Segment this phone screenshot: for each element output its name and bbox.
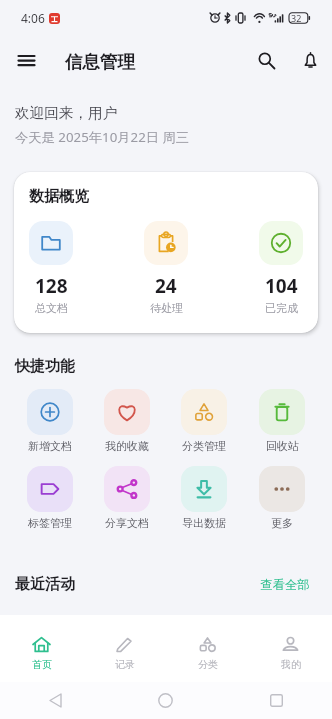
button[interactable]: 标签管理 (11, 466, 88, 530)
staticText: 导出数据 (182, 516, 226, 530)
staticText: 分类管理 (182, 439, 226, 453)
button[interactable]: 分类 (166, 615, 249, 671)
staticText: 信息管理 (65, 51, 135, 73)
button[interactable]: 回收站 (243, 389, 321, 453)
button[interactable]: 我的 (249, 615, 332, 671)
staticText: 128 (35, 273, 68, 299)
staticText: 总文档 (35, 301, 68, 315)
button[interactable]: 分享文档 (88, 466, 165, 530)
staticText: 104 (265, 273, 298, 299)
button[interactable]: 更多 (243, 466, 321, 530)
staticText: 已完成 (265, 301, 298, 315)
staticText: 首页 (32, 658, 52, 671)
button[interactable]: Notifications (292, 42, 328, 78)
staticText: 我的收藏 (105, 439, 149, 453)
button[interactable]: 24 (144, 221, 188, 315)
staticText: 更多 (271, 516, 293, 530)
button[interactable]: 记录 (83, 615, 166, 671)
staticText: 4:06 (21, 10, 45, 26)
staticText: 待处理 (150, 301, 183, 315)
staticText: 今天是 2025年10月22日 周三 (15, 128, 190, 146)
staticText: 标签管理 (28, 516, 72, 530)
button[interactable]: 导出数据 (165, 466, 243, 530)
button[interactable]: 新增文档 (11, 389, 88, 453)
staticText: 欢迎回来，用户 (15, 104, 118, 122)
staticText: 最近活动 (15, 575, 75, 594)
button[interactable]: 首页 (0, 615, 83, 671)
staticText: 快捷功能 (15, 357, 75, 376)
staticText: 记录 (115, 658, 135, 671)
button[interactable]: 查看全部 (260, 577, 310, 593)
button[interactable]: 我的收藏 (88, 389, 165, 453)
staticText: 分享文档 (105, 516, 149, 530)
button[interactable]: 104 (259, 221, 303, 315)
button[interactable]: Menu (9, 43, 43, 77)
staticText: 查看全部 (260, 577, 310, 593)
staticText: 新增文档 (28, 439, 72, 453)
staticText: 分类 (198, 658, 218, 671)
staticText: 我的 (281, 658, 301, 671)
staticText: 数据概览 (29, 187, 89, 206)
button[interactable]: Search (248, 42, 284, 78)
staticText: 回收站 (266, 439, 299, 453)
button[interactable]: 分类管理 (165, 389, 243, 453)
button[interactable]: 128 (29, 221, 73, 315)
staticText: 32 (291, 12, 302, 24)
staticText: 24 (155, 273, 177, 299)
